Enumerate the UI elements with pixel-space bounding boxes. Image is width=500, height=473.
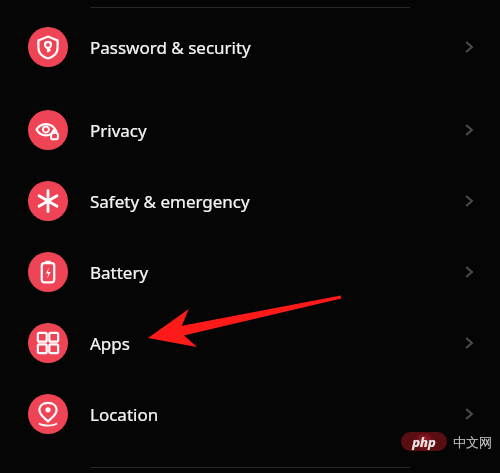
other: Open Safety & emergency bbox=[460, 192, 478, 210]
other: Open Location bbox=[460, 405, 478, 423]
button[interactable]: Location bbox=[0, 378, 500, 449]
staticText: Apps bbox=[90, 332, 130, 355]
button[interactable]: Battery bbox=[0, 236, 500, 307]
other: Open Battery bbox=[460, 263, 478, 281]
other: Open Password & security bbox=[460, 38, 478, 56]
staticText: php bbox=[412, 433, 436, 451]
staticText: Location bbox=[90, 403, 159, 426]
button[interactable]: Password & security bbox=[0, 0, 500, 94]
staticText: Privacy bbox=[90, 119, 147, 142]
staticText: 中文网 bbox=[453, 434, 492, 450]
staticText: Battery bbox=[90, 261, 149, 284]
other: Open Apps bbox=[460, 334, 478, 352]
staticText: Password & security bbox=[90, 36, 251, 59]
button[interactable]: Apps bbox=[0, 307, 500, 378]
button[interactable]: Safety & emergency bbox=[0, 165, 500, 236]
button[interactable]: Privacy bbox=[0, 94, 500, 165]
other: Open Privacy bbox=[460, 121, 478, 139]
staticText: Safety & emergency bbox=[90, 190, 250, 213]
